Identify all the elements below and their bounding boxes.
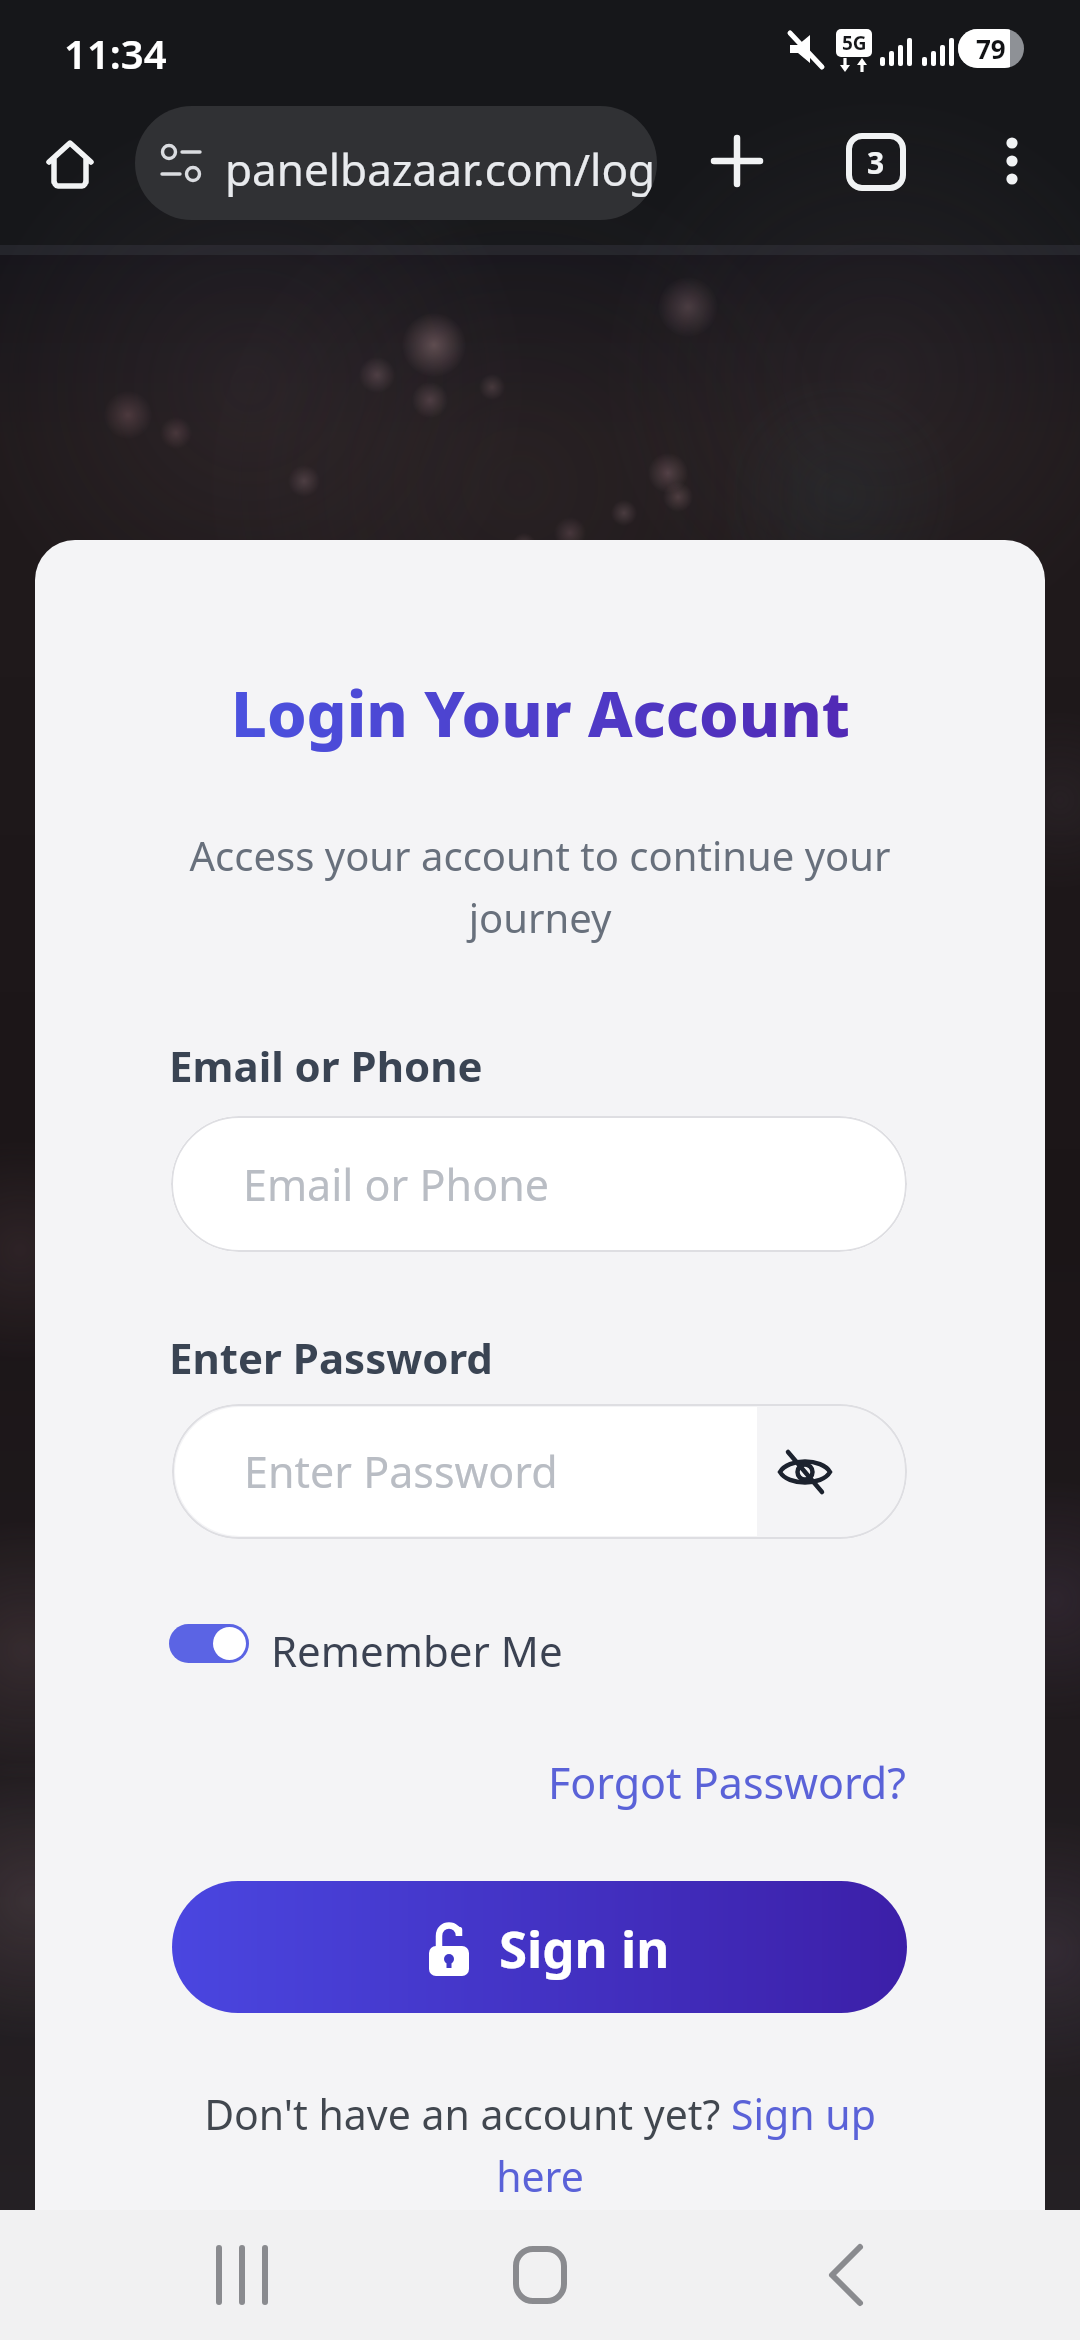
staticText: Enter Password — [169, 1329, 493, 1386]
button[interactable]: Sign in — [172, 1881, 907, 2013]
button[interactable]: Enter Password — [172, 1404, 907, 1539]
staticText: Email or Phone — [243, 1155, 549, 1214]
button[interactable]: Forgot Password? — [548, 1753, 906, 1812]
button[interactable]: panelbazaar.com/log — [135, 106, 657, 220]
button[interactable]: Don't have an account yet? Sign up here — [190, 2086, 890, 2204]
staticText: Enter Password — [244, 1442, 558, 1501]
staticText: 3 — [867, 142, 885, 183]
button[interactable] — [795, 2225, 895, 2325]
staticText: panelbazaar.com/log — [225, 139, 656, 199]
staticText: Login Your Account — [231, 670, 850, 756]
staticText: 79 — [976, 31, 1006, 66]
staticText: Sign in — [499, 1913, 670, 1982]
button[interactable] — [490, 2225, 590, 2325]
staticText: 11:34 — [64, 26, 167, 80]
staticText: 5G — [842, 30, 867, 56]
staticText: Access your account to continue your jou… — [35, 828, 1045, 945]
staticText: Email or Phone — [169, 1037, 483, 1094]
button[interactable] — [192, 2225, 292, 2325]
staticText: Remember Me — [271, 1622, 563, 1679]
button[interactable]: Email or Phone — [171, 1116, 907, 1252]
button[interactable] — [169, 1624, 249, 1663]
button[interactable] — [982, 126, 1042, 198]
button[interactable]: 3 — [842, 129, 910, 195]
button[interactable] — [30, 124, 110, 204]
button[interactable] — [700, 124, 774, 198]
